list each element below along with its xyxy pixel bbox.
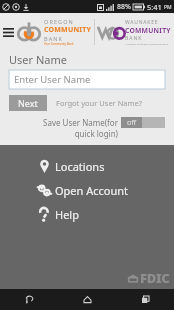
staticText: Forgot your User Name? [56, 98, 143, 108]
button[interactable]: Locations [37, 158, 105, 175]
button[interactable]: Help [37, 206, 79, 223]
staticText: Save User Name(for quick login) [38, 117, 118, 139]
staticText: Your Community Bank [44, 42, 74, 46]
button[interactable]: Save User Name toggle, off [121, 117, 165, 128]
button[interactable]: Menu [0, 24, 16, 40]
button[interactable]: Home [58, 289, 116, 310]
button[interactable]: Back [0, 289, 58, 310]
staticText: COMMUNITY [125, 26, 171, 35]
button[interactable]: Open Account [37, 182, 129, 199]
staticText: Open Account [55, 183, 129, 198]
staticText: WAUNAKEE [125, 19, 159, 26]
button[interactable]: Forgot your User Name? [56, 98, 143, 108]
staticText: Help [55, 207, 79, 222]
staticText: COMMUNITY [44, 25, 92, 35]
staticText: OREGON [44, 18, 74, 25]
staticText: User Name [9, 52, 67, 67]
staticText: BANK [44, 35, 64, 42]
staticText: Next [18, 97, 38, 109]
staticText: A Division of Oregon Community Bank [125, 42, 169, 45]
staticText: Locations [55, 159, 105, 174]
staticText: 5:41 [147, 2, 162, 12]
staticText: PM [164, 4, 172, 11]
button[interactable]: Enter User Name [9, 70, 165, 89]
staticText: off [127, 118, 137, 128]
staticText: FDIC [140, 269, 170, 287]
staticText: Enter User Name [14, 73, 91, 86]
staticText: 88% [117, 2, 131, 12]
button[interactable]: Next [9, 95, 47, 111]
staticText: BANK [125, 35, 143, 42]
button[interactable]: Recents [116, 289, 174, 310]
